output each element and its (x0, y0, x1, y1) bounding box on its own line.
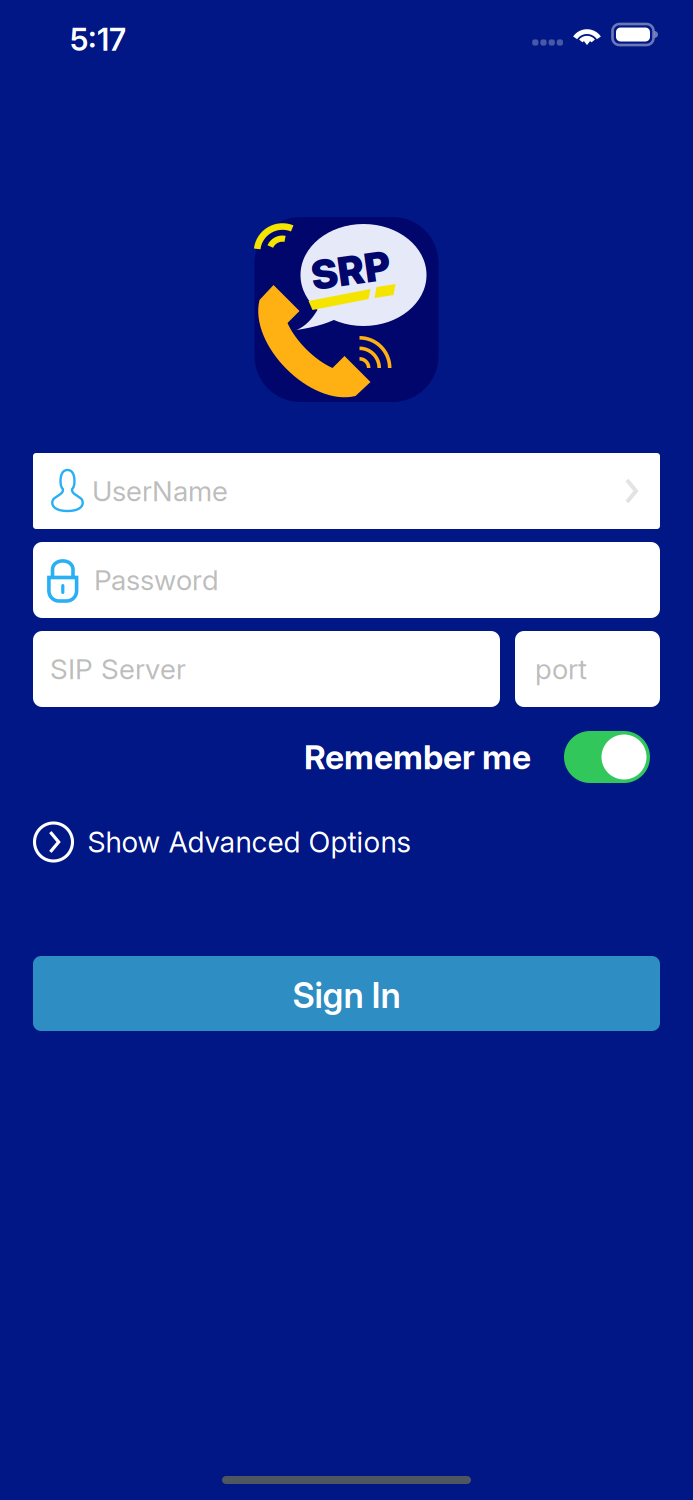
staticText: port (535, 652, 587, 686)
button[interactable]: Remember me (564, 731, 650, 783)
staticText: Remember me (304, 737, 531, 777)
staticText: SRP (310, 246, 390, 294)
staticText: Password (94, 563, 219, 597)
staticText: Show Advanced Options (87, 825, 411, 859)
staticText: UserName (92, 474, 228, 508)
button[interactable]: Show Advanced Options (31, 823, 661, 861)
staticText: SIP Server (50, 652, 186, 686)
button[interactable]: UserName (33, 453, 660, 529)
button[interactable]: port (515, 631, 660, 707)
staticText: Sign In (292, 974, 400, 1016)
button[interactable]: Sign In (33, 956, 660, 1031)
button[interactable]: Password (33, 542, 660, 618)
staticText: 5:17 (70, 21, 126, 58)
button[interactable]: SIP Server (33, 631, 500, 707)
